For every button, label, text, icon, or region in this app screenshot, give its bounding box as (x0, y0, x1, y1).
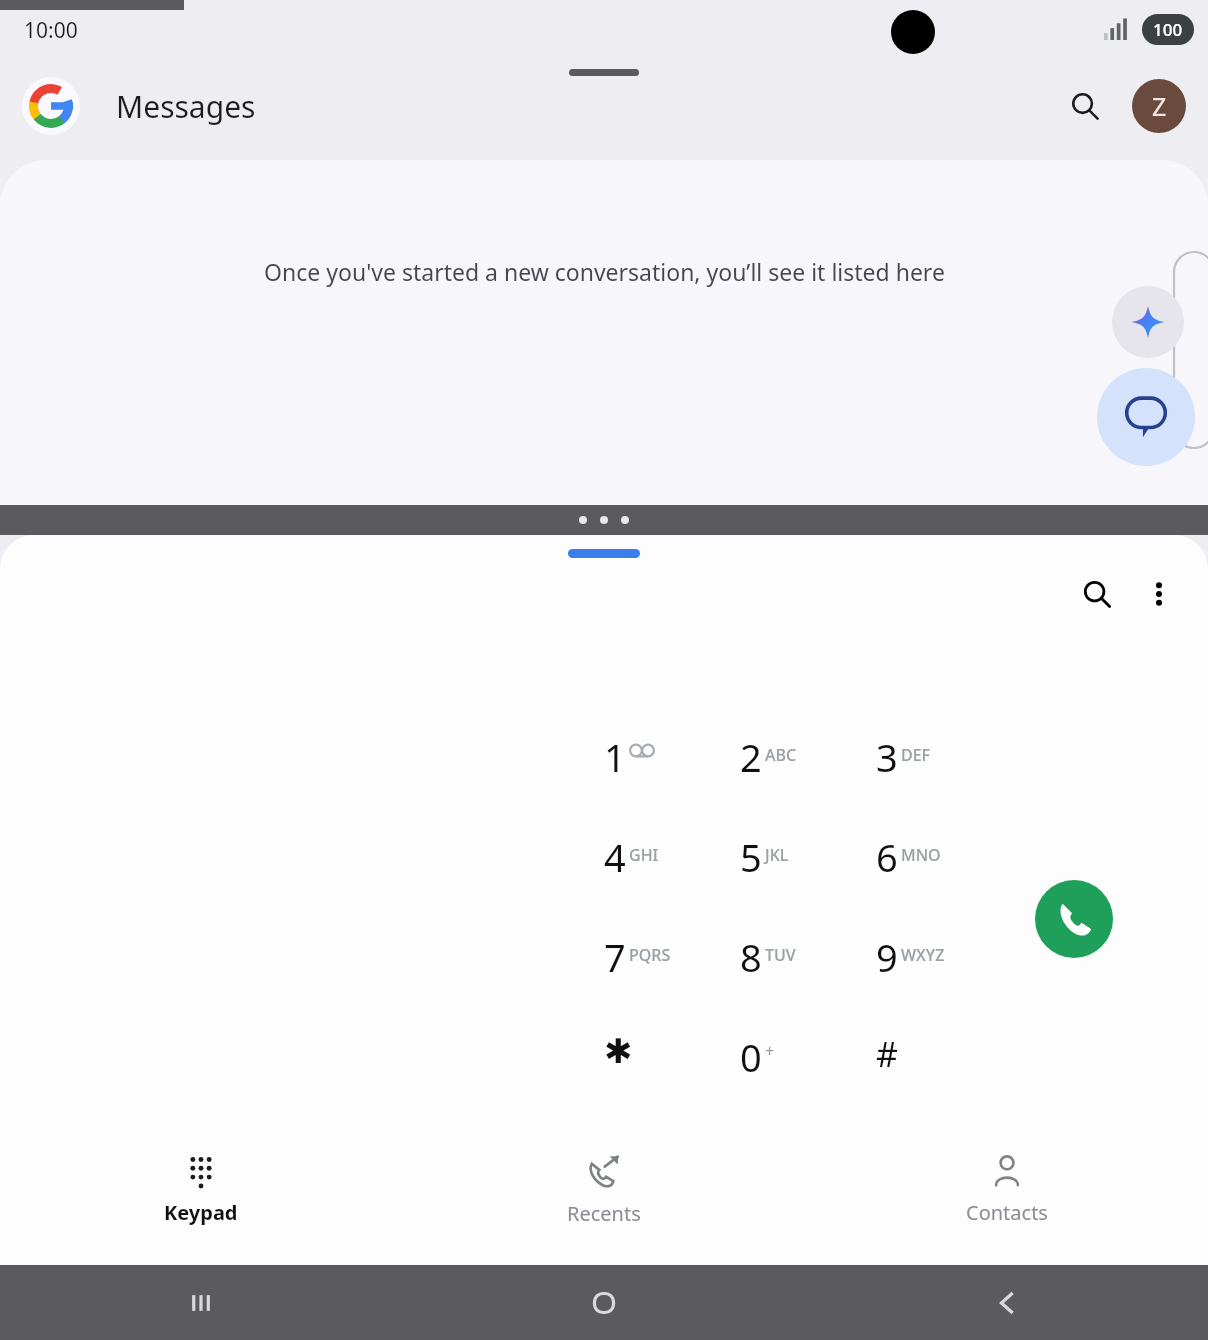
staticText: 8 (740, 931, 762, 983)
staticText: + (765, 1040, 775, 1062)
staticText: 3 (876, 731, 898, 783)
button[interactable]: Recents (0, 1265, 402, 1340)
button[interactable]: 6 (876, 831, 1012, 931)
staticText: 5 (740, 831, 762, 883)
staticText: PQRS (629, 944, 671, 966)
button[interactable]: 5 (740, 831, 876, 931)
button[interactable]: Search (1056, 77, 1114, 135)
staticText: Contacts (966, 1199, 1048, 1226)
button[interactable]: Home (402, 1265, 805, 1340)
button[interactable]: 7 (604, 931, 740, 1031)
staticText: 0 (740, 1031, 762, 1083)
staticText: 6 (876, 831, 898, 883)
button[interactable]: More options (1130, 565, 1188, 623)
staticText: DEF (901, 744, 931, 766)
staticText: Recents (567, 1200, 641, 1227)
button[interactable]: Google (22, 77, 80, 135)
staticText: 2 (740, 731, 762, 783)
button[interactable]: Call (1035, 880, 1113, 958)
button[interactable]: # (876, 1031, 1012, 1131)
button[interactable]: Contacts (805, 1115, 1208, 1265)
staticText: Keypad (164, 1199, 238, 1226)
button[interactable]: Search (1068, 565, 1126, 623)
button[interactable]: Recents (402, 1115, 805, 1265)
button[interactable]: 4 (604, 831, 740, 931)
button[interactable]: Back (805, 1265, 1208, 1340)
button[interactable]: 0 (740, 1031, 876, 1131)
staticText: 100 (1153, 18, 1183, 41)
staticText: 9 (876, 931, 898, 983)
staticText: Z (1152, 89, 1167, 123)
button[interactable]: 2 (740, 731, 876, 831)
staticText: ✱ (604, 1031, 633, 1071)
staticText: # (876, 1031, 898, 1077)
button[interactable]: Account (1132, 79, 1186, 133)
staticText: 4 (604, 831, 626, 883)
staticText: WXYZ (901, 944, 945, 966)
staticText: ABC (765, 744, 797, 766)
staticText: Messages (116, 86, 256, 127)
button[interactable]: Start chat (1097, 368, 1195, 466)
staticText: 10:00 (24, 16, 78, 45)
button[interactable]: 1 (604, 731, 740, 831)
button[interactable]: Keypad (0, 1115, 402, 1265)
staticText: GHI (629, 844, 659, 866)
staticText: MNO (901, 844, 941, 866)
button[interactable]: 9 (876, 931, 1012, 1031)
staticText: TUV (765, 944, 796, 966)
button[interactable]: ✱ (604, 1031, 740, 1131)
staticText: JKL (765, 844, 789, 866)
button[interactable]: Gemini (1112, 286, 1184, 358)
staticText: Once you've started a new conversation, … (264, 256, 945, 287)
staticText: 7 (604, 931, 626, 983)
staticText: 1 (604, 731, 626, 783)
button[interactable]: 3 (876, 731, 1012, 831)
button[interactable]: 8 (740, 931, 876, 1031)
